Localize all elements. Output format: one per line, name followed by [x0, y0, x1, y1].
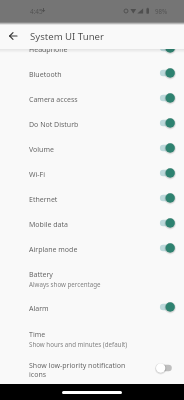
button[interactable]: Show low-priority notification icons — [0, 356, 184, 384]
button[interactable]: Toggle on — [156, 216, 176, 230]
button[interactable]: Toggle on — [156, 300, 176, 314]
button[interactable]: Back — [4, 27, 22, 45]
staticText: Alarm — [29, 304, 49, 314]
button[interactable]: Volume — [0, 137, 184, 162]
button[interactable]: Do Not Disturb — [0, 112, 184, 137]
button[interactable]: Alarm — [0, 296, 184, 322]
staticText: Volume — [29, 145, 54, 155]
button[interactable]: Headphone — [0, 49, 184, 62]
button[interactable]: Camera access — [0, 87, 184, 112]
button[interactable]: Toggle on — [156, 66, 176, 80]
staticText: Bluetooth — [29, 70, 62, 80]
staticText: System UI Tuner — [30, 30, 104, 43]
staticText: 4:45 — [30, 7, 43, 16]
staticText: 98% — [155, 7, 168, 15]
staticText: Wi-Fi — [29, 170, 46, 180]
staticText: Airplane mode — [29, 245, 78, 255]
button[interactable]: Time — [0, 322, 184, 356]
staticText: Always show percentage — [29, 280, 101, 288]
button[interactable]: Mobile data — [0, 212, 184, 237]
button[interactable]: Toggle on — [156, 91, 176, 105]
button[interactable]: Battery — [0, 262, 184, 296]
button[interactable]: Ethernet — [0, 187, 184, 212]
staticText: Do Not Disturb — [29, 120, 79, 130]
staticText: Time — [29, 330, 46, 340]
button[interactable]: Toggle on — [156, 116, 176, 130]
button[interactable]: Bluetooth — [0, 62, 184, 87]
button[interactable]: Toggle on — [156, 191, 176, 205]
staticText: Camera access — [29, 95, 78, 105]
staticText: Mobile data — [29, 220, 68, 230]
button[interactable]: Wi-Fi — [0, 162, 184, 187]
button[interactable]: Toggle on — [156, 49, 176, 55]
button[interactable]: Airplane mode — [0, 237, 184, 262]
button[interactable]: Toggle on — [156, 166, 176, 180]
staticText: Headphone — [29, 49, 68, 55]
staticText: Battery — [29, 270, 53, 280]
staticText: Show hours and minutes (default) — [29, 340, 128, 348]
staticText: Show low-priority notification icons — [29, 361, 142, 379]
button[interactable]: Toggle off — [156, 361, 176, 375]
button[interactable]: Toggle on — [156, 141, 176, 155]
button[interactable]: Toggle on — [156, 241, 176, 255]
staticText: Ethernet — [29, 195, 58, 205]
